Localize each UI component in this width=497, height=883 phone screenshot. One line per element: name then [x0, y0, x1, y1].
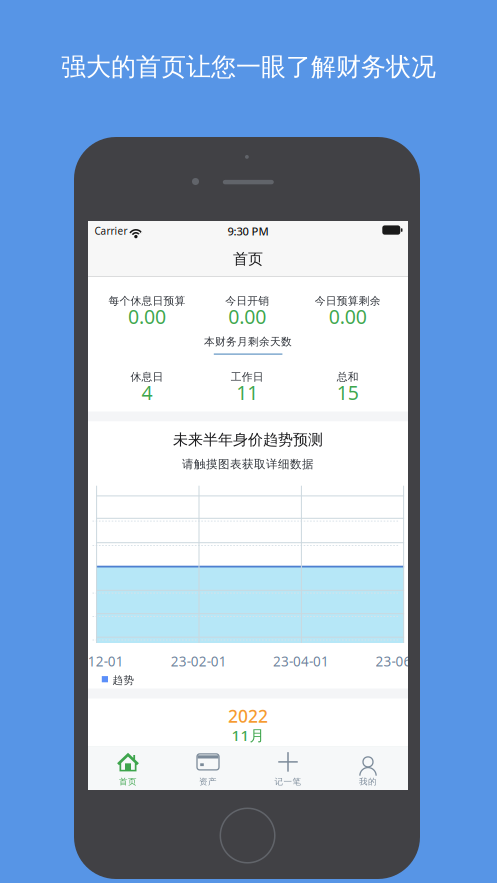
- staticText: 强大的首页让您一眼了解财务状况: [61, 51, 436, 83]
- staticText: 今日开销: [225, 294, 269, 308]
- staticText: 每个休息日预算: [108, 294, 185, 308]
- staticText: 我的: [359, 776, 377, 787]
- staticText: 15: [337, 379, 359, 406]
- staticText: 11: [236, 379, 258, 406]
- staticText: 本财务月剩余天数: [204, 335, 292, 348]
- staticText: 2022: [228, 704, 268, 728]
- staticText: 今日预算剩余: [315, 294, 381, 308]
- staticText: 未来半年身价趋势预测: [173, 430, 323, 449]
- staticText: 23-06-01: [375, 652, 431, 670]
- staticText: 工作日: [231, 370, 264, 384]
- staticText: 休息日: [130, 370, 163, 384]
- staticText: 记一笔: [274, 776, 301, 787]
- staticText: 23-02-01: [171, 652, 227, 670]
- button[interactable]: 首页: [88, 747, 168, 790]
- staticText: 0.00: [128, 303, 166, 330]
- staticText: 首页: [119, 776, 137, 787]
- staticText: 请触摸图表获取详细数据: [182, 457, 314, 471]
- staticText: 22-12-01: [68, 652, 124, 670]
- staticText: 23-04-01: [273, 652, 329, 670]
- button[interactable]: 记一笔: [248, 747, 328, 790]
- staticText: 趋势: [113, 674, 135, 687]
- staticText: 9:30 PM: [227, 224, 268, 239]
- staticText: 首页: [233, 249, 263, 268]
- staticText: 11月: [231, 725, 264, 745]
- button[interactable]: 资产: [168, 747, 248, 790]
- button[interactable]: 我的: [328, 747, 408, 790]
- staticText: 资产: [199, 776, 217, 787]
- staticText: 0.00: [329, 303, 367, 330]
- staticText: 总和: [337, 370, 359, 384]
- staticText: 0.00: [228, 303, 266, 330]
- staticText: 4: [141, 379, 152, 406]
- staticText: Carrier: [95, 224, 128, 238]
